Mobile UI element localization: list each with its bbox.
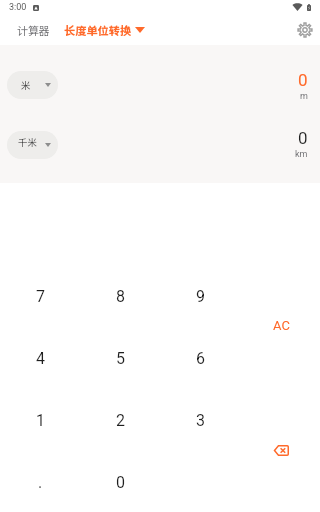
button[interactable]: AC [241, 294, 320, 356]
staticText: AC [273, 318, 290, 333]
staticText: 0 [298, 70, 308, 90]
button[interactable]: Backspace [241, 419, 320, 481]
staticText: km [295, 149, 308, 160]
staticText: 0 [116, 473, 125, 492]
staticText: 计算器 [17, 22, 50, 38]
button[interactable]: 8 [80, 265, 160, 327]
staticText: 1 [36, 411, 45, 430]
button[interactable]: 3 [160, 389, 240, 451]
button[interactable]: 长度单位转换 [62, 19, 147, 41]
button[interactable]: 9 [160, 265, 240, 327]
button[interactable]: 7 [0, 265, 80, 327]
staticText: . [38, 473, 43, 492]
button[interactable]: Settings [292, 17, 318, 43]
staticText: 千米 [18, 135, 38, 149]
staticText: 8 [116, 287, 125, 306]
button[interactable]: 4 [0, 327, 80, 389]
staticText: 5 [116, 349, 125, 368]
button[interactable]: 2 [80, 389, 160, 451]
button[interactable]: 5 [80, 327, 160, 389]
staticText: 4 [36, 349, 45, 368]
button[interactable]: 1 [0, 389, 80, 451]
staticText: 3 [196, 411, 205, 430]
staticText: 3:00 [9, 2, 27, 13]
button[interactable]: 6 [160, 327, 240, 389]
staticText: 米 [21, 78, 31, 92]
staticText: 6 [196, 349, 205, 368]
button[interactable]: 0 [80, 451, 160, 512]
staticText: 9 [196, 287, 205, 306]
staticText: 长度单位转换 [64, 22, 132, 38]
staticText: 7 [36, 287, 45, 306]
staticText: 2 [116, 411, 125, 430]
button[interactable]: 计算器 [0, 19, 54, 41]
button[interactable]: 米 [7, 71, 58, 99]
button[interactable]: 千米 [7, 131, 58, 159]
staticText: m [300, 91, 308, 102]
staticText: 0 [298, 128, 308, 148]
